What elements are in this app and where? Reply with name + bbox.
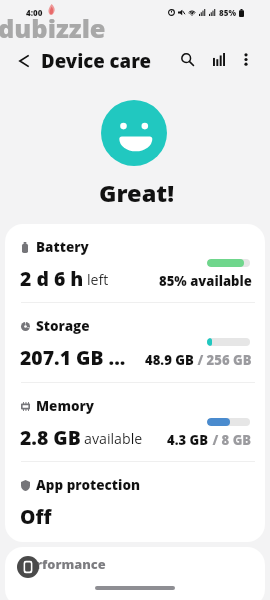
button[interactable]: Performance [5, 547, 265, 600]
staticText: App protection [36, 476, 141, 494]
staticText: dubizzle [0, 11, 106, 46]
staticText: / 8 GB [209, 431, 252, 449]
button[interactable]: Search [175, 47, 200, 72]
button[interactable]: More options [234, 47, 258, 71]
staticText: 85% available [159, 272, 252, 290]
staticText: 4:00 [26, 7, 43, 18]
staticText: / 256 GB [194, 351, 252, 369]
staticText: Storage [36, 317, 90, 335]
button[interactable]: Memory [5, 383, 265, 462]
staticText: Memory [36, 397, 95, 415]
staticText: Off [20, 503, 52, 529]
staticText: 207.1 GB ... [20, 344, 126, 370]
staticText: Device care [41, 48, 151, 73]
button[interactable]: Storage [5, 303, 265, 382]
button[interactable]: Battery [5, 224, 265, 303]
button[interactable]: App protection [5, 462, 265, 541]
staticText: left [87, 270, 109, 289]
staticText: 85% [219, 7, 236, 18]
staticText: 4.3 GB [167, 431, 209, 449]
staticText: available [84, 429, 143, 448]
button[interactable]: Navigate up [8, 48, 38, 74]
button[interactable]: Usage statistics [206, 47, 231, 72]
staticText: 48.9 GB [145, 351, 194, 369]
staticText: 2 d 6 h [20, 265, 84, 291]
staticText: 2.8 GB [20, 424, 81, 450]
staticText: Battery [36, 238, 89, 256]
staticText: Performance [20, 555, 106, 572]
staticText: Great! [99, 177, 175, 209]
